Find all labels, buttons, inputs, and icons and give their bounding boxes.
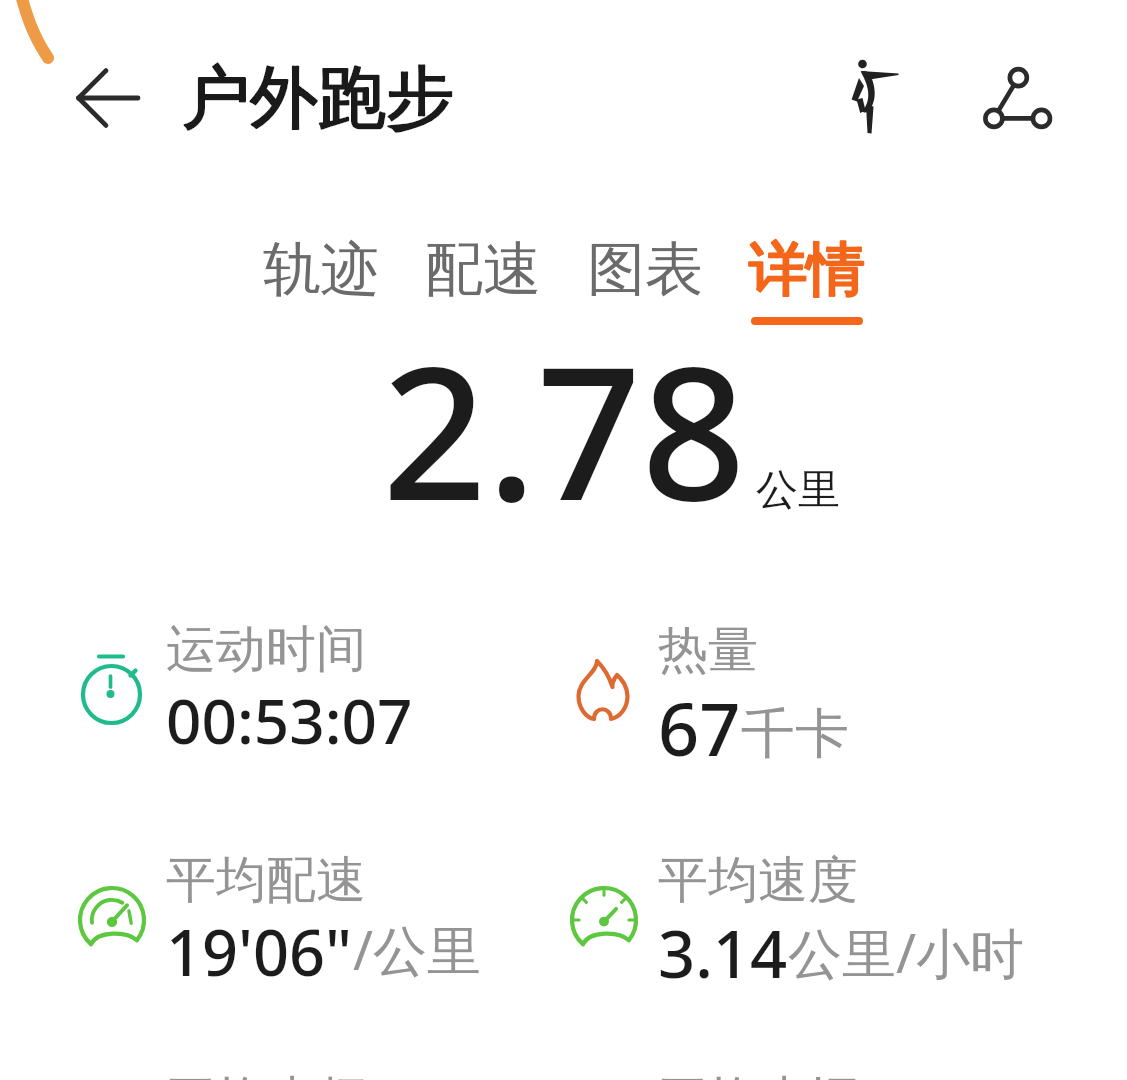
button[interactable]: Activity type (834, 55, 914, 135)
staticText: 平均配速 (166, 849, 366, 912)
staticText: 运动时间 (166, 618, 366, 681)
staticText: 详情 (749, 233, 865, 306)
staticText: 轨迹 (263, 233, 379, 306)
staticText: 平均步幅 (658, 1069, 858, 1080)
staticText: 热量 (658, 619, 758, 682)
button[interactable] (566, 798, 1066, 973)
button[interactable]: 详情 (749, 233, 865, 325)
staticText: 00:53:07 (166, 678, 413, 762)
staticText: 2.78 (382, 304, 746, 553)
button[interactable]: 图表 (587, 233, 703, 325)
staticText: 详情 (749, 233, 865, 306)
staticText: /公里 (353, 912, 482, 986)
button[interactable] (74, 798, 574, 973)
button[interactable]: 配速 (425, 233, 541, 325)
staticText: 配速 (425, 233, 541, 306)
staticText: 平均步频 (166, 1069, 366, 1080)
staticText: 67 (658, 679, 741, 777)
staticText: 公里/小时 (788, 915, 1025, 989)
button[interactable]: Back (76, 70, 138, 126)
button[interactable] (74, 567, 574, 742)
button[interactable] (566, 568, 1066, 743)
staticText: 19'06" (166, 909, 353, 995)
staticText: 户外跑步 (182, 56, 454, 142)
staticText: 平均速度 (658, 849, 858, 912)
staticText: 图表 (587, 233, 703, 306)
staticText: 3.14 (658, 909, 788, 998)
button[interactable]: Share (975, 62, 1059, 134)
button[interactable] (74, 1018, 574, 1080)
button[interactable]: 轨迹 (263, 233, 379, 325)
staticText: 户外跑步 (182, 56, 454, 142)
staticText: 千卡 (741, 700, 849, 768)
staticText: 公里 (756, 464, 840, 517)
button[interactable] (566, 1018, 1066, 1080)
